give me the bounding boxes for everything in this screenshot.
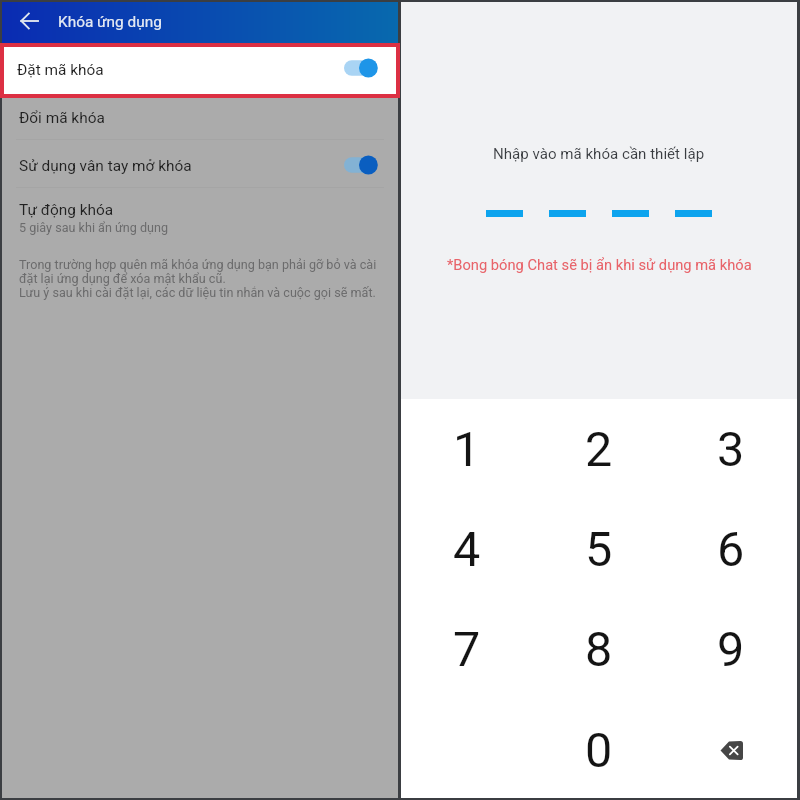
staticText: *Bong bóng Chat sẽ bị ẩn khi sử dụng mã …: [447, 256, 752, 273]
button[interactable]: Tự động khóa: [2, 194, 398, 235]
button[interactable]: 3: [665, 414, 797, 484]
staticText: 9: [717, 621, 745, 678]
button[interactable]: Backspace: [719, 741, 743, 760]
button[interactable]: Back: [7, 6, 41, 40]
staticText: Đặt mã khóa: [17, 61, 104, 79]
button[interactable]: 6: [665, 514, 797, 584]
staticText: 6: [717, 521, 745, 578]
button[interactable]: Backspace: [665, 715, 797, 785]
button[interactable]: Đặt mã khóa: [4, 47, 396, 94]
button[interactable]: Sử dụng vân tay mở khóa: [2, 142, 398, 187]
button[interactable]: 0: [533, 715, 665, 785]
button[interactable]: 4: [401, 514, 533, 584]
staticText: Sử dụng vân tay mở khóa: [19, 157, 192, 175]
button[interactable]: Đổi mã khóa: [2, 98, 398, 139]
staticText: 3: [717, 421, 745, 478]
button[interactable]: 7: [401, 614, 533, 684]
staticText: Trong trường hợp quên mã khóa ứng dụng b…: [19, 257, 391, 300]
button[interactable]: 8: [533, 614, 665, 684]
staticText: 1: [453, 421, 481, 478]
button[interactable]: [344, 58, 378, 78]
staticText: 4: [453, 521, 481, 578]
staticText: 2: [585, 421, 613, 478]
staticText: Khóa ứng dụng: [58, 13, 162, 31]
staticText: 7: [453, 621, 481, 678]
staticText: 5: [585, 521, 613, 578]
button[interactable]: [344, 155, 378, 175]
button[interactable]: 2: [533, 414, 665, 484]
staticText: Đổi mã khóa: [19, 109, 105, 127]
staticText: 0: [585, 722, 613, 779]
staticText: 5 giây sau khi ẩn ứng dụng: [19, 220, 169, 235]
staticText: 8: [585, 621, 613, 678]
button[interactable]: 9: [665, 614, 797, 684]
staticText: Nhập vào mã khóa cần thiết lập: [493, 145, 705, 163]
button[interactable]: 1: [401, 414, 533, 484]
button[interactable]: 5: [533, 514, 665, 584]
staticText: Tự động khóa: [19, 201, 114, 219]
